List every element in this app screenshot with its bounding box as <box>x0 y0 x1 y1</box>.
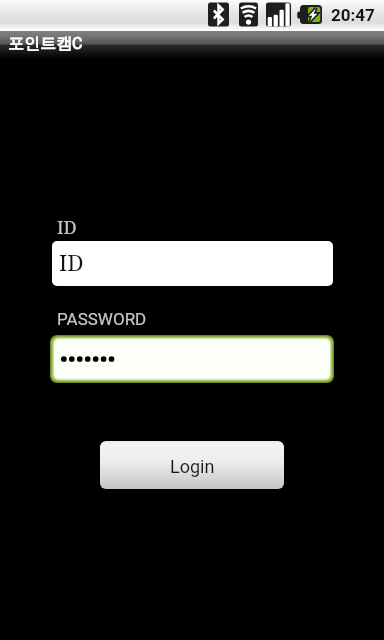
staticText: 포인트캠C <box>8 34 83 54</box>
staticText: PASSWORD <box>57 309 147 329</box>
staticText: 20:47 <box>331 5 375 25</box>
staticText: Login <box>170 456 215 477</box>
staticText: ID <box>57 215 77 240</box>
staticText: ID <box>59 247 84 278</box>
button[interactable]: Login <box>100 441 284 489</box>
button[interactable]: ID <box>52 241 333 286</box>
button[interactable] <box>50 335 334 383</box>
